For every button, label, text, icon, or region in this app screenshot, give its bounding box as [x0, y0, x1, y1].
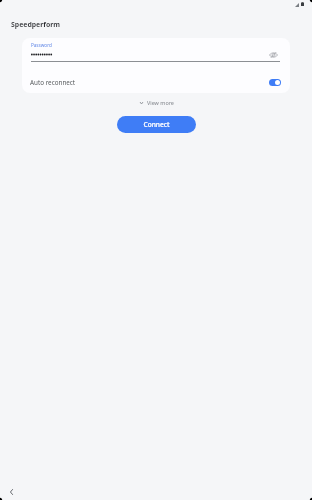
button[interactable]: Connect: [117, 116, 196, 133]
button[interactable]: View more: [137, 97, 177, 108]
staticText: Auto reconnect: [30, 78, 76, 87]
button[interactable]: Show password: [266, 48, 280, 62]
button[interactable]: Back: [4, 484, 19, 499]
staticText: View more: [147, 99, 174, 106]
button[interactable]: Password: [31, 40, 263, 61]
staticText: Password: [31, 42, 52, 48]
staticText: Speedperform: [11, 20, 61, 29]
staticText: Connect: [143, 120, 170, 129]
button[interactable]: Auto reconnect: [22, 74, 290, 91]
